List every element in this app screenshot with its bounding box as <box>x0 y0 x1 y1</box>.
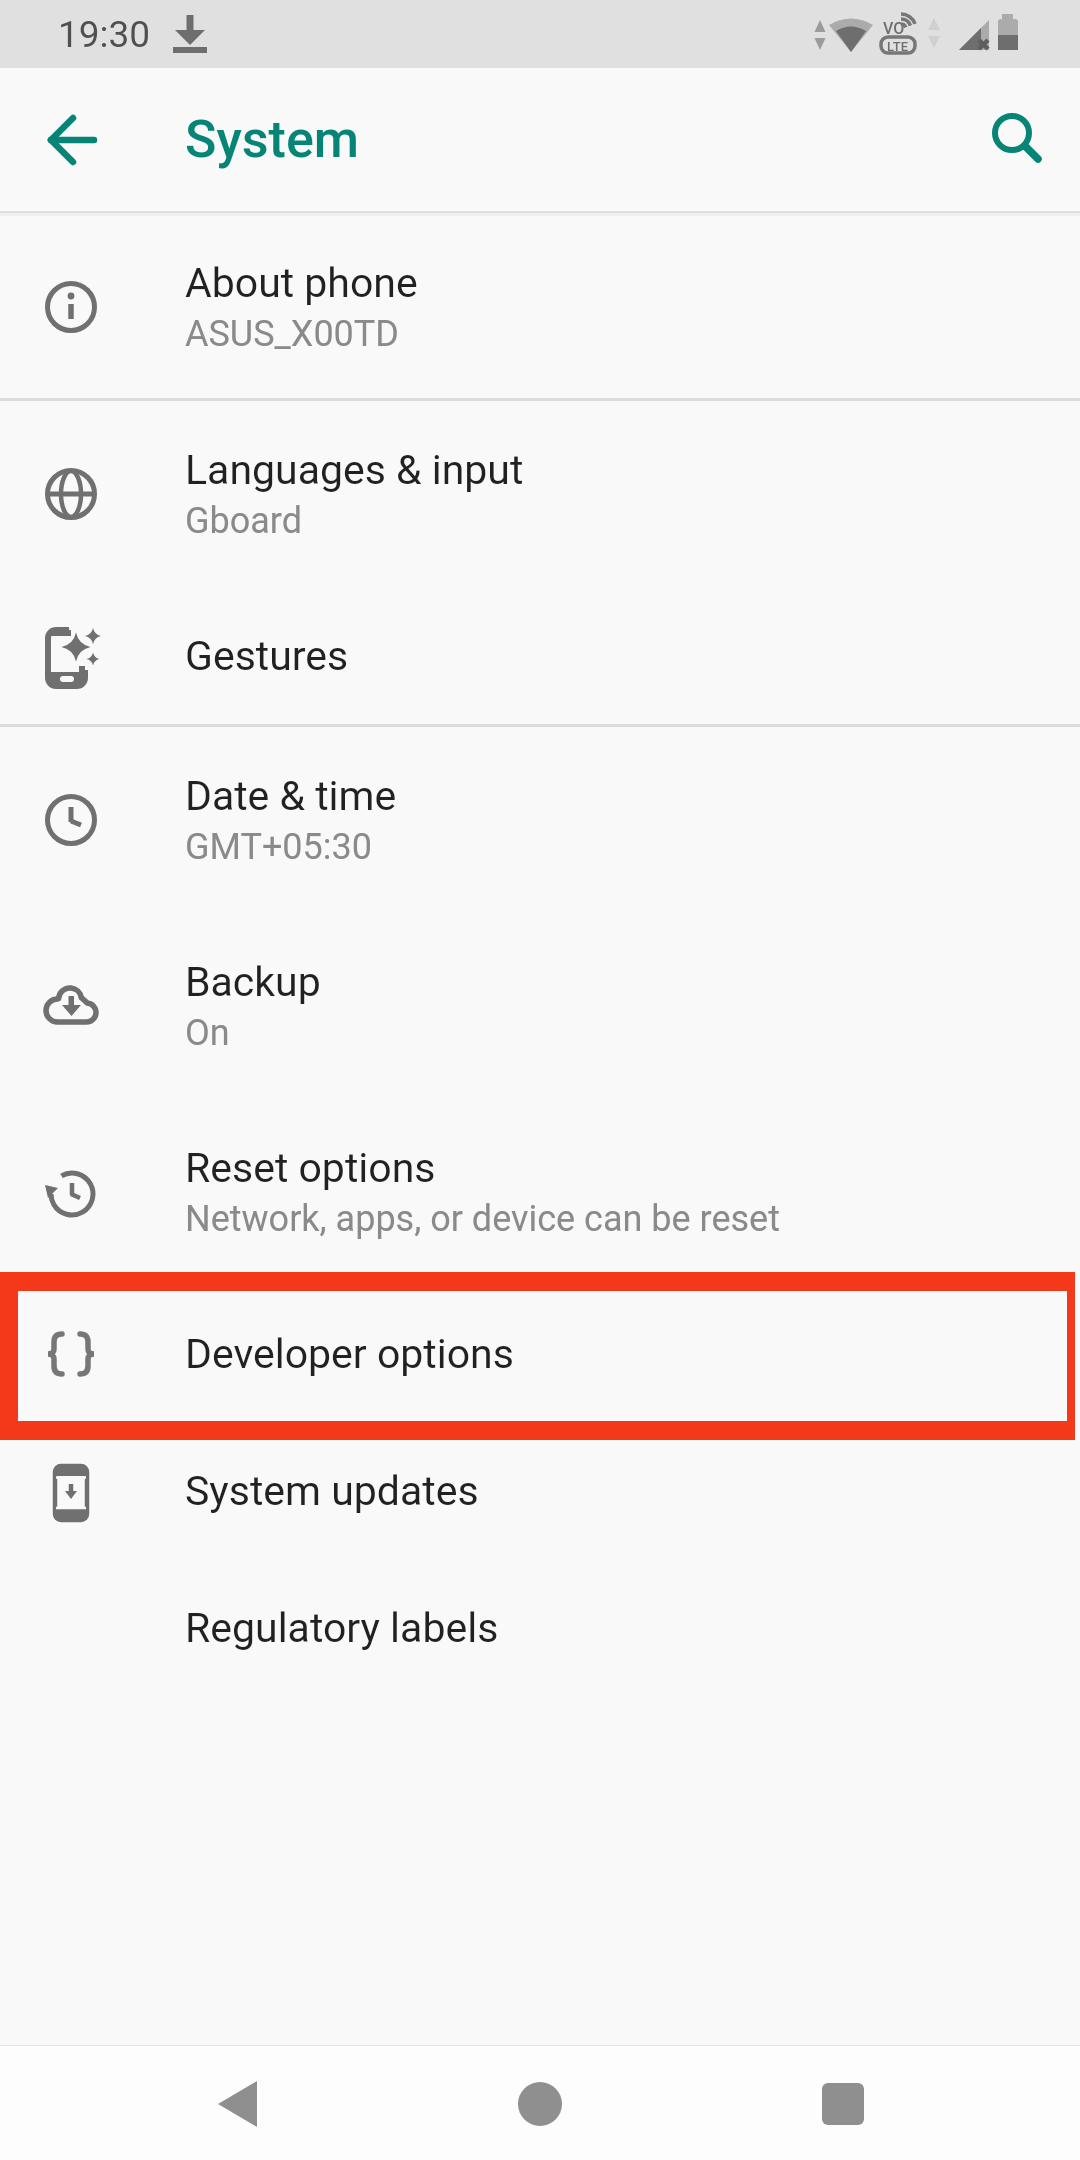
staticText: 19:30 <box>58 13 151 56</box>
staticText: Regulatory labels <box>185 1604 499 1652</box>
staticText: On <box>185 1012 230 1054</box>
button[interactable] <box>0 2046 360 2160</box>
button[interactable]: System updates <box>0 1422 1080 1559</box>
button[interactable] <box>720 2046 1080 2160</box>
staticText: System updates <box>185 1467 479 1515</box>
staticText: ASUS_X00TD <box>185 313 399 355</box>
button[interactable]: About phone <box>0 216 1080 398</box>
staticText: VO <box>883 19 905 38</box>
staticText: Reset options <box>185 1144 436 1192</box>
button[interactable]: Languages & input <box>0 401 1080 587</box>
button[interactable]: Gestures <box>0 587 1080 724</box>
button[interactable]: Regulatory labels <box>0 1559 1080 1696</box>
button[interactable]: Backup <box>0 913 1080 1099</box>
staticText: Backup <box>185 958 321 1006</box>
staticText: About phone <box>185 259 418 307</box>
staticText: GMT+05:30 <box>185 826 372 868</box>
staticText: Gestures <box>185 632 349 680</box>
button[interactable]: Developer options <box>0 1285 1080 1422</box>
button[interactable] <box>986 108 1050 172</box>
staticText: Date & time <box>185 772 397 820</box>
staticText: LTE <box>887 39 908 54</box>
staticText: Network, apps, or device can be reset <box>185 1198 780 1240</box>
button[interactable] <box>40 108 104 172</box>
staticText: Developer options <box>185 1330 514 1378</box>
staticText: Languages & input <box>185 446 524 494</box>
staticText: System <box>185 109 360 170</box>
button[interactable]: Date & time <box>0 727 1080 913</box>
button[interactable]: Reset options <box>0 1099 1080 1285</box>
button[interactable] <box>360 2046 720 2160</box>
staticText: Gboard <box>185 500 303 542</box>
